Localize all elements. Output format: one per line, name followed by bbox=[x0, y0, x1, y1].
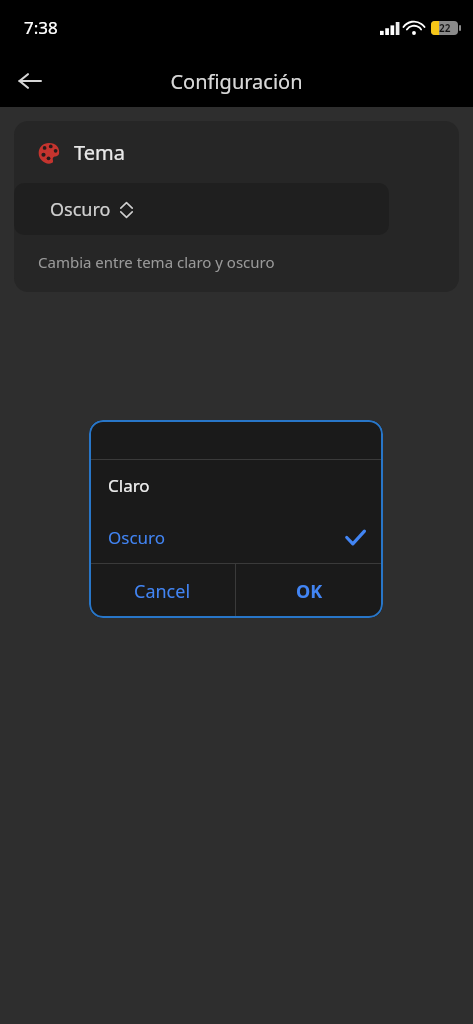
staticText: Tema bbox=[74, 139, 125, 166]
staticText: Configuración bbox=[170, 68, 303, 95]
button[interactable]: Oscuro bbox=[14, 183, 389, 235]
staticText: 22 bbox=[439, 21, 451, 35]
button[interactable]: Cancel bbox=[89, 564, 235, 618]
button[interactable]: Oscuro bbox=[89, 511, 383, 563]
staticText: Claro bbox=[108, 474, 150, 497]
button[interactable]: Claro bbox=[89, 460, 383, 511]
staticText: Oscuro bbox=[50, 197, 111, 222]
staticText: 7:38 bbox=[24, 16, 58, 39]
staticText: Oscuro bbox=[108, 526, 166, 549]
staticText: OK bbox=[296, 579, 323, 604]
staticText: Cancel bbox=[134, 579, 191, 604]
staticText: Cambia entre tema claro y oscuro bbox=[38, 252, 275, 272]
button[interactable]: OK bbox=[236, 564, 383, 618]
button[interactable]: Back bbox=[6, 57, 54, 105]
